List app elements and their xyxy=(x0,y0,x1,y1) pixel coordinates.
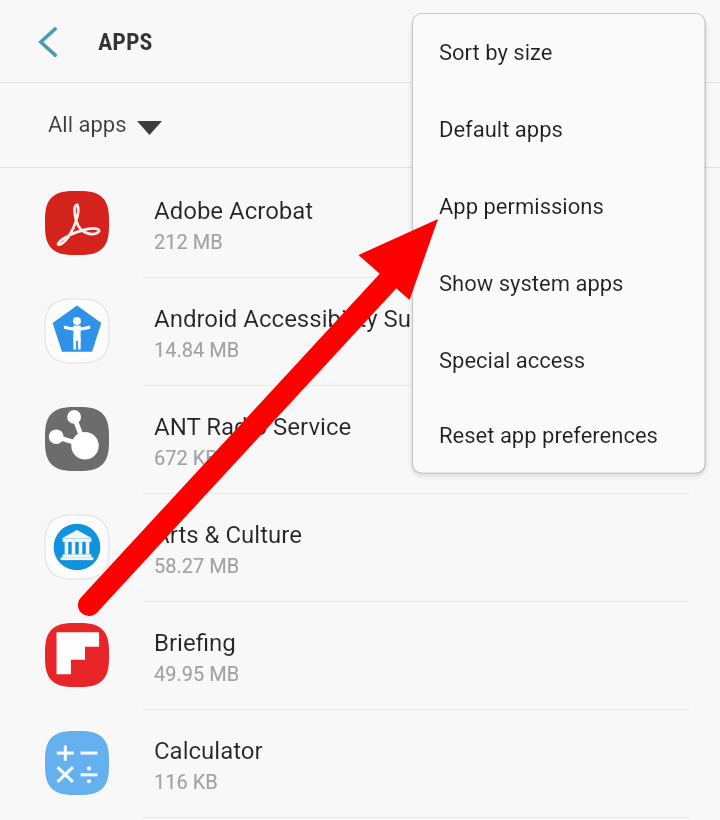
staticText: App permissions xyxy=(439,194,604,220)
staticText: All apps xyxy=(48,112,127,138)
button[interactable]: Show system apps xyxy=(412,245,705,322)
staticText: ANT Radio Service xyxy=(154,413,352,441)
button[interactable]: Adobe Acrobat xyxy=(0,169,720,277)
staticText: 212 MB xyxy=(154,230,223,253)
button[interactable]: Special access xyxy=(412,322,705,399)
button[interactable]: Calculator xyxy=(0,709,720,817)
staticText: Arts & Culture xyxy=(154,521,302,549)
staticText: Sort by size xyxy=(439,40,553,66)
staticText: APPS xyxy=(98,28,153,56)
staticText: Default apps xyxy=(439,117,563,143)
staticText: Calculator xyxy=(154,737,263,765)
staticText: Special access xyxy=(439,348,586,374)
button[interactable]: App permissions xyxy=(412,168,705,245)
staticText: Show system apps xyxy=(439,271,624,297)
staticText: 672 KB xyxy=(154,446,218,469)
button[interactable]: Briefing xyxy=(0,601,720,709)
staticText: 58.27 MB xyxy=(154,554,240,577)
staticText: Android Accessibility Suite xyxy=(154,305,438,333)
button[interactable]: Android Accessibility Suite xyxy=(0,277,720,385)
staticText: 14.84 MB xyxy=(154,338,240,361)
staticText: Briefing xyxy=(154,629,236,657)
button[interactable]: All apps xyxy=(0,83,720,167)
staticText: 49.95 MB xyxy=(154,662,240,685)
button[interactable]: ANT Radio Service xyxy=(0,385,720,493)
button[interactable]: Back xyxy=(15,9,81,75)
staticText: Adobe Acrobat xyxy=(154,197,314,225)
staticText: 116 KB xyxy=(154,770,218,793)
button[interactable]: Arts & Culture xyxy=(0,493,720,601)
button[interactable]: Sort by size xyxy=(412,14,705,91)
button[interactable]: Default apps xyxy=(412,91,705,168)
staticText: Reset app preferences xyxy=(439,423,658,449)
button[interactable]: Reset app preferences xyxy=(412,399,705,473)
